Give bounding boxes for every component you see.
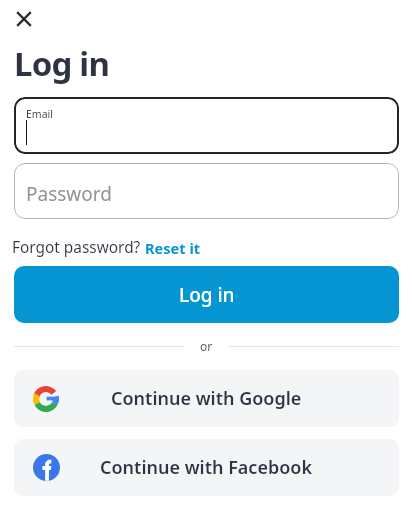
staticText: Email [26, 107, 53, 121]
staticText: Forgot password? [12, 237, 141, 258]
button[interactable]: Continue with Google [14, 370, 399, 427]
button[interactable]: Password [14, 163, 399, 219]
button[interactable]: Close [9, 4, 38, 33]
staticText: Log in [14, 41, 110, 86]
staticText: or [200, 338, 213, 354]
button[interactable]: Reset it [145, 238, 201, 258]
button[interactable]: Email [14, 97, 399, 154]
staticText: Continue with Facebook [100, 455, 313, 480]
button[interactable]: Log in [14, 266, 399, 323]
staticText: Continue with Google [111, 386, 302, 411]
staticText: Password [26, 181, 112, 207]
button[interactable]: Continue with Facebook [14, 439, 399, 496]
staticText: Log in [179, 282, 235, 308]
